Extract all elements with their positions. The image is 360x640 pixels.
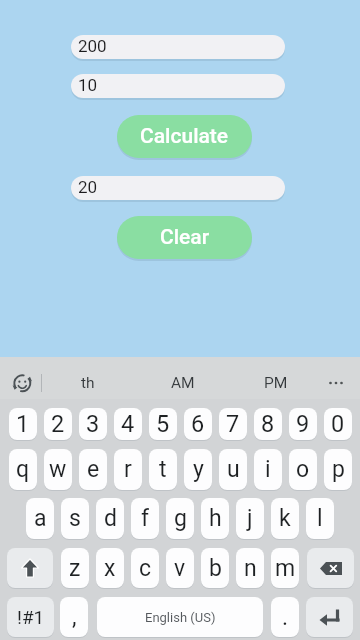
staticText: th xyxy=(81,374,95,392)
button[interactable]: j xyxy=(236,498,264,539)
button[interactable]: 9 xyxy=(289,408,317,440)
staticText: s xyxy=(69,505,81,532)
staticText: b xyxy=(209,555,222,582)
staticText: j xyxy=(247,505,253,532)
button[interactable]: c xyxy=(131,548,159,588)
staticText: 5 xyxy=(156,410,170,438)
button[interactable]: s xyxy=(61,498,89,539)
button[interactable]: r xyxy=(114,449,142,490)
button[interactable]: 0 xyxy=(324,408,352,440)
button[interactable]: 10 xyxy=(71,74,285,98)
staticText: f xyxy=(141,505,149,532)
button[interactable]: f xyxy=(131,498,159,539)
button[interactable]: w xyxy=(44,449,72,490)
button[interactable]: 3 xyxy=(79,408,107,440)
button[interactable]: z xyxy=(61,548,89,588)
button[interactable]: i xyxy=(254,449,282,490)
button[interactable]: v xyxy=(166,548,194,588)
button[interactable]: . xyxy=(271,597,299,637)
button[interactable]: t xyxy=(149,449,177,490)
staticText: 4 xyxy=(121,410,135,438)
button[interactable]: 200 xyxy=(71,35,285,59)
staticText: AM xyxy=(171,374,195,392)
staticText: 0 xyxy=(331,410,345,438)
staticText: v xyxy=(174,555,186,582)
button[interactable]: 4 xyxy=(114,408,142,440)
button[interactable]: b xyxy=(201,548,229,588)
button[interactable]: 20 xyxy=(71,176,285,200)
staticText: English (US) xyxy=(145,610,216,625)
button[interactable]: k xyxy=(271,498,299,539)
staticText: t xyxy=(159,456,167,483)
button[interactable]: AM xyxy=(158,366,208,400)
button[interactable] xyxy=(306,597,353,637)
staticText: l xyxy=(317,505,323,532)
button[interactable]: y xyxy=(184,449,212,490)
button[interactable] xyxy=(323,370,349,396)
button[interactable]: 6 xyxy=(184,408,212,440)
button[interactable]: e xyxy=(79,449,107,490)
staticText: m xyxy=(275,555,296,582)
button[interactable]: p xyxy=(324,449,352,490)
staticText: a xyxy=(34,505,47,532)
staticText: 3 xyxy=(86,410,100,438)
button[interactable]: 1 xyxy=(9,408,37,440)
staticText: n xyxy=(244,555,257,582)
button[interactable]: h xyxy=(201,498,229,539)
staticText: 10 xyxy=(78,75,98,95)
button[interactable]: x xyxy=(96,548,124,588)
staticText: o xyxy=(296,456,310,483)
button[interactable]: Calculate xyxy=(117,115,252,158)
staticText: 8 xyxy=(261,410,275,438)
button[interactable]: Clear xyxy=(117,216,252,259)
staticText: z xyxy=(69,555,81,582)
staticText: PM xyxy=(264,374,288,392)
button[interactable]: q xyxy=(9,449,37,490)
button[interactable]: g xyxy=(166,498,194,539)
staticText: 200 xyxy=(78,36,107,56)
staticText: 9 xyxy=(296,410,310,438)
button[interactable]: m xyxy=(271,548,299,588)
staticText: e xyxy=(87,456,100,483)
button[interactable]: PM xyxy=(251,366,301,400)
button[interactable]: d xyxy=(96,498,124,539)
button[interactable]: th xyxy=(63,366,113,400)
staticText: 7 xyxy=(226,410,240,438)
staticText: p xyxy=(332,456,345,483)
button[interactable] xyxy=(7,548,53,588)
button[interactable]: u xyxy=(219,449,247,490)
staticText: x xyxy=(104,555,116,582)
staticText: q xyxy=(16,456,30,483)
staticText: d xyxy=(104,505,117,532)
button[interactable]: 2 xyxy=(44,408,72,440)
staticText: . xyxy=(282,604,289,631)
staticText: !#1 xyxy=(17,606,45,628)
button[interactable]: a xyxy=(26,498,54,539)
staticText: i xyxy=(265,456,271,483)
staticText: 6 xyxy=(191,410,205,438)
button[interactable]: !#1 xyxy=(7,597,54,637)
button[interactable]: 7 xyxy=(219,408,247,440)
staticText: 1 xyxy=(16,410,30,438)
button[interactable]: , xyxy=(60,597,88,637)
staticText: c xyxy=(139,555,152,582)
staticText: , xyxy=(72,604,77,631)
staticText: Clear xyxy=(160,225,210,250)
button[interactable]: o xyxy=(289,449,317,490)
button[interactable]: l xyxy=(306,498,334,539)
button[interactable]: English (US) xyxy=(97,597,263,637)
button[interactable] xyxy=(13,374,32,393)
staticText: k xyxy=(279,505,291,532)
staticText: 2 xyxy=(51,410,65,438)
staticText: 20 xyxy=(78,177,98,197)
staticText: Calculate xyxy=(140,124,229,149)
staticText: h xyxy=(209,505,222,532)
staticText: w xyxy=(49,456,67,483)
button[interactable]: n xyxy=(236,548,264,588)
button[interactable]: 8 xyxy=(254,408,282,440)
staticText: u xyxy=(227,456,240,483)
staticText: y xyxy=(193,456,204,483)
button[interactable] xyxy=(307,548,354,588)
staticText: r xyxy=(124,456,132,483)
button[interactable]: 5 xyxy=(149,408,177,440)
